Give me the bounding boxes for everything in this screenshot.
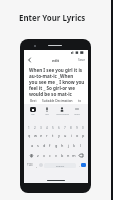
- staticText: v: [55, 153, 57, 158]
- staticText: .: [79, 163, 80, 168]
- button[interactable]: Best: [26, 97, 41, 104]
- staticText: h: [61, 143, 64, 148]
- staticText: n: [67, 153, 70, 158]
- button[interactable]: Save: [78, 58, 85, 62]
- button[interactable]: 2: [32, 125, 38, 131]
- staticText: edit: [52, 58, 60, 63]
- button[interactable]: l: [77, 140, 83, 150]
- button[interactable]: Shift: [27, 150, 35, 160]
- staticText: 3: [40, 126, 42, 130]
- staticText: 2: [34, 126, 36, 130]
- staticText: z: [37, 153, 39, 158]
- button[interactable]: English: [44, 163, 76, 168]
- button[interactable]: 1: [26, 125, 32, 131]
- button[interactable]: 8: [68, 125, 74, 131]
- button[interactable]: s: [35, 140, 41, 150]
- staticText: q: [28, 133, 31, 138]
- staticText: 0: [82, 126, 84, 130]
- staticText: j: [68, 143, 69, 148]
- button[interactable]: v: [53, 150, 59, 160]
- button[interactable]: i: [68, 131, 74, 140]
- button[interactable]: More: [70, 105, 84, 125]
- button[interactable]: Back: [25, 55, 34, 64]
- button[interactable]: q: [26, 131, 32, 140]
- button[interactable]: a: [29, 140, 35, 150]
- staticText: o: [76, 133, 79, 138]
- button[interactable]: Backspace: [77, 150, 85, 160]
- button[interactable]: k: [71, 140, 77, 150]
- staticText: 1: [28, 126, 30, 130]
- button[interactable]: z: [35, 150, 41, 160]
- staticText: More: [74, 113, 80, 116]
- staticText: Save: [78, 58, 85, 62]
- staticText: Enter Your Lyrics: [19, 13, 86, 24]
- staticText: to: [78, 99, 82, 103]
- staticText: e: [40, 133, 43, 138]
- staticText: i: [71, 133, 72, 138]
- staticText: 4: [46, 126, 48, 130]
- button[interactable]: y: [56, 131, 62, 140]
- button[interactable]: Mic: [40, 105, 54, 125]
- staticText: 7: [64, 126, 66, 130]
- button[interactable]: to: [73, 97, 86, 104]
- button[interactable]: f: [47, 140, 53, 150]
- button[interactable]: 3: [38, 125, 44, 131]
- button[interactable]: n: [65, 150, 71, 160]
- staticText: When I see you girl it is au-to-mat-ic _…: [29, 67, 85, 97]
- button[interactable]: Suitable Decimation: [41, 97, 73, 104]
- button[interactable]: ,: [34, 160, 39, 170]
- staticText: m: [72, 153, 76, 158]
- button[interactable]: t: [50, 131, 56, 140]
- staticText: 8: [70, 126, 72, 130]
- button[interactable]: 5: [50, 125, 56, 131]
- staticText: u: [64, 133, 67, 138]
- button[interactable]: 6: [56, 125, 62, 131]
- staticText: d: [43, 143, 46, 148]
- button[interactable]: c: [47, 150, 53, 160]
- button[interactable]: 7: [62, 125, 68, 131]
- button[interactable]: j: [65, 140, 71, 150]
- staticText: ,: [36, 163, 37, 168]
- staticText: Suitable Decimation: [42, 99, 73, 103]
- staticText: f: [49, 143, 51, 148]
- button[interactable]: r: [44, 131, 50, 140]
- staticText: 9: [76, 126, 78, 130]
- staticText: g: [55, 143, 58, 148]
- staticText: 6: [58, 126, 60, 130]
- staticText: t: [52, 133, 54, 138]
- button[interactable]: h: [59, 140, 65, 150]
- staticText: p: [82, 133, 85, 138]
- button[interactable]: b: [59, 150, 65, 160]
- button[interactable]: u: [62, 131, 68, 140]
- staticText: 5: [52, 126, 54, 130]
- staticText: Mic: [45, 113, 49, 116]
- staticText: GIF: [31, 113, 35, 116]
- button[interactable]: 0: [80, 125, 86, 131]
- staticText: a: [31, 143, 34, 148]
- staticText: Best: [30, 99, 37, 103]
- staticText: x: [43, 153, 46, 158]
- staticText: r: [46, 133, 48, 138]
- staticText: k: [73, 143, 76, 148]
- button[interactable]: e: [38, 131, 44, 140]
- staticText: ?123: [27, 163, 33, 167]
- button[interactable]: x: [41, 150, 47, 160]
- button[interactable]: ?123: [26, 160, 34, 170]
- button[interactable]: Voice typing: [54, 105, 70, 125]
- button[interactable]: Emoji: [39, 163, 43, 167]
- staticText: Voice typing: [56, 113, 69, 116]
- button[interactable]: o: [74, 131, 80, 140]
- button[interactable]: g: [53, 140, 59, 150]
- button[interactable]: p: [80, 131, 86, 140]
- button[interactable]: w: [32, 131, 38, 140]
- staticText: s: [37, 143, 39, 148]
- button[interactable]: d: [41, 140, 47, 150]
- button[interactable]: GIF: [26, 105, 40, 125]
- staticText: English: [56, 164, 65, 167]
- button[interactable]: 9: [74, 125, 80, 131]
- button[interactable]: 4: [44, 125, 50, 131]
- button[interactable]: Enter: [81, 163, 86, 167]
- staticText: c: [49, 153, 51, 158]
- button[interactable]: .: [77, 160, 81, 170]
- button[interactable]: m: [71, 150, 77, 160]
